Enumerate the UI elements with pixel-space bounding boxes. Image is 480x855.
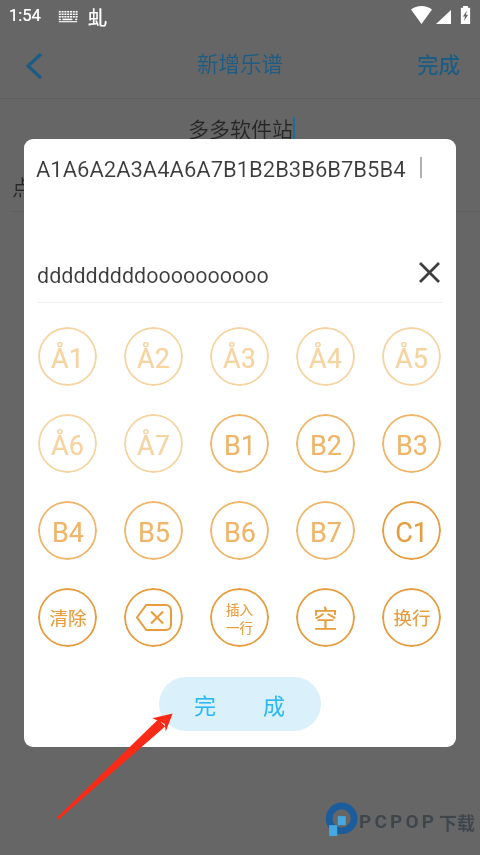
staticText: Å4 [309,343,342,375]
button[interactable]: 清除 [38,588,97,647]
button[interactable]: B4 [38,501,97,560]
staticText: 虬 [88,3,108,31]
button[interactable]: B2 [296,414,355,473]
button[interactable]: 换行 [382,588,441,647]
button[interactable]: Å2 [124,327,183,386]
button[interactable]: Clear text [403,246,455,299]
staticText: 成 [263,688,286,720]
staticText: Å5 [395,343,428,375]
staticText: 完成 [417,48,461,79]
staticText: B4 [52,517,84,549]
button[interactable]: 插入 一行 [210,588,269,647]
staticText: PCPOP [359,810,438,832]
button[interactable]: B3 [382,414,441,473]
button[interactable]: Backspace [124,588,183,647]
staticText: A1A6A2A3A4A6A7B1B2B3B6B7B5B4 [36,157,406,183]
button[interactable]: Back [6,32,62,99]
staticText: Å3 [223,343,256,375]
staticText: 换行 [393,604,431,631]
staticText: Å1 [51,343,84,375]
button[interactable]: Å5 [382,327,441,386]
button[interactable]: B1 [210,414,269,473]
button[interactable]: B5 [124,501,183,560]
button[interactable]: Å7 [124,414,183,473]
button[interactable]: C1 [382,501,441,560]
staticText: 新增乐谱 [197,47,284,78]
staticText: Å7 [137,430,170,462]
button[interactable]: Å4 [296,327,355,386]
staticText: 多多软件站 [188,113,293,143]
staticText: 1:54 [9,6,41,25]
button[interactable]: Å6 [38,414,97,473]
staticText: B2 [310,430,342,462]
staticText: B6 [224,517,256,549]
staticText: dddddddddoooooooooo [37,263,269,288]
button[interactable]: B6 [210,501,269,560]
staticText: 空 [313,600,338,635]
staticText: Å2 [137,343,170,375]
staticText: 下载 [439,809,475,835]
staticText: C1 [395,517,428,549]
staticText: B1 [224,430,256,462]
button[interactable]: B7 [296,501,355,560]
staticText: 点 [12,171,33,201]
staticText: Å6 [51,430,84,462]
button[interactable]: Å1 [38,327,97,386]
staticText: B7 [310,517,342,549]
staticText: 插入 一行 [226,599,253,637]
staticText: 完 [194,688,217,720]
button[interactable]: 空 [296,588,355,647]
button[interactable]: Å3 [210,327,269,386]
button[interactable]: 完 [159,677,321,731]
staticText: B5 [138,517,170,549]
button[interactable]: 完成 [408,32,480,99]
staticText: B3 [396,430,428,462]
staticText: 清除 [49,604,87,631]
